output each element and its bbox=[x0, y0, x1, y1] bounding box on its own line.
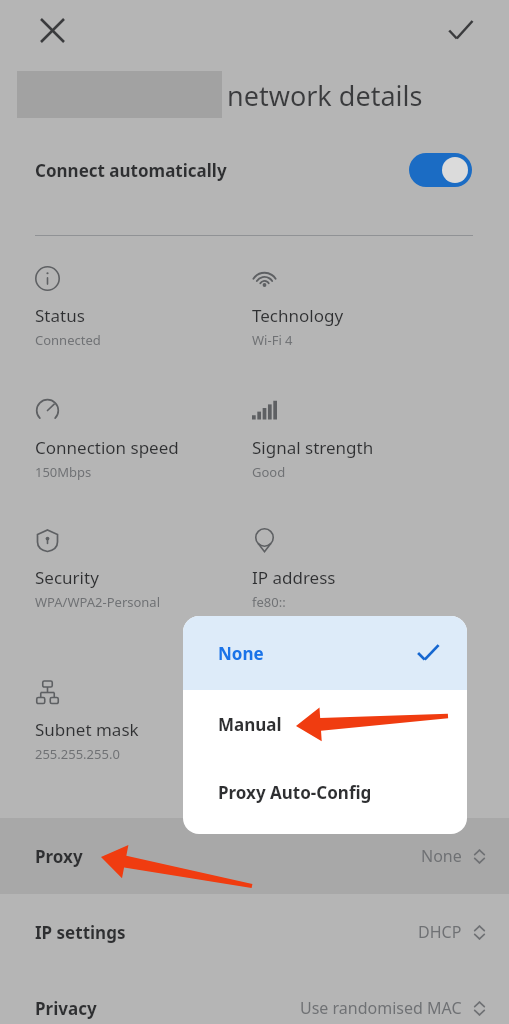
staticText: Technology bbox=[252, 304, 344, 327]
staticText: Subnet mask bbox=[35, 718, 139, 741]
staticText: Manual bbox=[218, 713, 282, 736]
staticText: Connect automatically bbox=[35, 159, 409, 182]
button[interactable]: Manual bbox=[183, 690, 467, 758]
staticText: Good bbox=[252, 463, 286, 481]
staticText: Connected bbox=[35, 331, 101, 349]
staticText: network details bbox=[227, 77, 423, 114]
button[interactable]: Save bbox=[434, 4, 486, 56]
staticText: None bbox=[218, 642, 264, 665]
button[interactable]: Subnet mask bbox=[17, 680, 235, 763]
staticText: 150Mbps bbox=[35, 463, 92, 481]
staticText: fe80:: bbox=[252, 593, 286, 611]
staticText: Status bbox=[35, 304, 85, 327]
staticText: 255.255.255.0 bbox=[35, 745, 120, 763]
button[interactable]: IP settings bbox=[0, 894, 509, 970]
button[interactable]: Proxy bbox=[0, 818, 509, 894]
staticText: Signal strength bbox=[252, 436, 374, 459]
staticText: Proxy bbox=[35, 845, 421, 868]
staticText: Security bbox=[35, 566, 99, 589]
staticText: Connection speed bbox=[35, 436, 179, 459]
staticText: DHCP bbox=[418, 921, 462, 943]
button[interactable]: Close bbox=[26, 4, 78, 56]
button[interactable]: IP address bbox=[234, 528, 452, 611]
staticText: IP settings bbox=[35, 921, 418, 944]
button[interactable]: Privacy bbox=[0, 970, 509, 1024]
button[interactable]: Signal strength bbox=[234, 398, 452, 481]
staticText: Proxy Auto-Config bbox=[218, 781, 372, 804]
staticText: Use randomised MAC bbox=[300, 997, 462, 1019]
staticText: WPA/WPA2-Personal bbox=[35, 593, 161, 611]
button[interactable]: Connection speed bbox=[17, 398, 235, 481]
staticText: None bbox=[421, 845, 462, 867]
button[interactable]: Connect automatically bbox=[0, 141, 509, 199]
staticText: IP address bbox=[252, 566, 336, 589]
button[interactable]: Proxy Auto-Config bbox=[183, 758, 467, 826]
button[interactable]: Technology bbox=[234, 266, 452, 349]
button[interactable]: Status bbox=[17, 266, 235, 349]
button[interactable]: Security bbox=[17, 528, 235, 611]
staticText: Wi-Fi 4 bbox=[252, 331, 293, 349]
staticText: Privacy bbox=[35, 997, 300, 1020]
button[interactable]: None bbox=[183, 616, 467, 690]
